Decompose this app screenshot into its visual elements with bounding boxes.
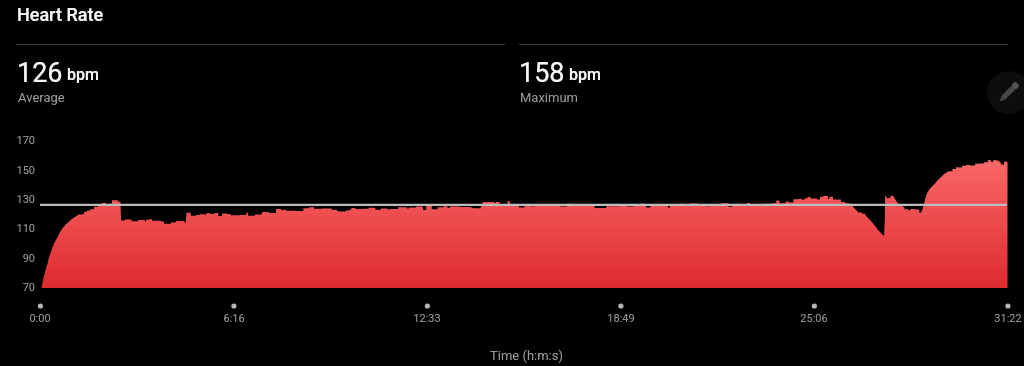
- staticText: bpm: [569, 65, 601, 84]
- staticText: 110: [16, 222, 35, 235]
- staticText: 126: [17, 57, 63, 89]
- staticText: 130: [16, 193, 35, 206]
- staticText: 70: [22, 281, 35, 294]
- staticText: Maximum: [520, 90, 578, 105]
- staticText: 170: [16, 134, 35, 147]
- staticText: Heart Rate: [17, 4, 104, 25]
- staticText: 150: [16, 164, 35, 177]
- staticText: 18:49: [607, 312, 635, 325]
- staticText: 6:16: [223, 312, 245, 325]
- staticText: bpm: [67, 65, 99, 84]
- staticText: 12:33: [413, 312, 441, 325]
- staticText: 0:00: [29, 312, 51, 325]
- staticText: 25:06: [800, 312, 828, 325]
- staticText: 31:22: [994, 312, 1022, 325]
- staticText: Average: [18, 90, 65, 105]
- staticText: 158: [519, 57, 565, 89]
- staticText: 90: [22, 252, 35, 265]
- staticText: Time (h:m:s): [490, 348, 563, 363]
- button[interactable]: Edit: [987, 71, 1024, 114]
